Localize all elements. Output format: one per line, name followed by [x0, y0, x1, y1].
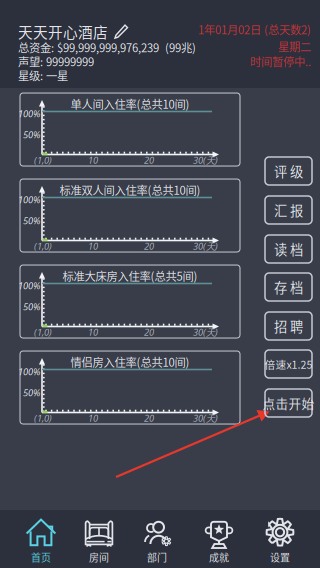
- staticText: 总资金: $99,999,999,976,239 (99兆): [18, 39, 196, 55]
- staticText: 天天开心酒店: [18, 21, 108, 42]
- staticText: 100%: [18, 193, 40, 206]
- staticText: 声望: 99999999: [18, 53, 94, 69]
- staticText: 首页: [31, 550, 51, 564]
- staticText: (1,0): [34, 154, 52, 166]
- staticText: 10: [88, 154, 98, 166]
- button[interactable]: 存 档: [265, 273, 312, 301]
- button[interactable]: 成就: [190, 510, 248, 568]
- staticText: 评 级: [274, 161, 303, 181]
- button[interactable]: 汇 报: [265, 196, 312, 224]
- staticText: 点击开始: [262, 394, 314, 412]
- staticText: 星级: 一星: [18, 67, 68, 83]
- button[interactable]: 房间: [70, 510, 128, 568]
- staticText: 成就: [209, 550, 229, 564]
- staticText: 星期二: [278, 38, 311, 54]
- staticText: 单人间入住率(总共10间): [70, 95, 189, 112]
- staticText: 汇 报: [274, 200, 303, 220]
- staticText: 10: [88, 326, 98, 338]
- staticText: 100%: [18, 279, 40, 292]
- staticText: (1,0): [34, 240, 52, 252]
- staticText: 10: [88, 240, 98, 252]
- staticText: 存 档: [274, 277, 303, 297]
- staticText: 1年01月02日 (总天数2): [198, 21, 311, 37]
- staticText: 30(天): [193, 412, 218, 424]
- button[interactable]: 首页: [12, 510, 70, 568]
- staticText: (1,0): [34, 412, 52, 424]
- button[interactable]: 设置: [251, 510, 309, 568]
- staticText: 20: [144, 154, 154, 166]
- staticText: 标准双人间入住率(总共10间): [59, 181, 200, 198]
- staticText: 20: [144, 412, 154, 424]
- staticText: 30(天): [193, 154, 218, 166]
- staticText: (1,0): [34, 326, 52, 338]
- button[interactable]: 部门: [128, 510, 186, 568]
- staticText: 20: [144, 326, 154, 338]
- staticText: 50%: [23, 300, 40, 313]
- staticText: 30(天): [193, 240, 218, 252]
- button[interactable]: 招 聘: [265, 312, 312, 340]
- staticText: 10: [88, 412, 98, 424]
- button[interactable]: Rename hotel: [114, 24, 129, 39]
- staticText: 情侣房入住率(总共10间): [70, 353, 189, 370]
- staticText: 倍速x1.25: [264, 356, 312, 372]
- staticText: 招 聘: [274, 316, 303, 336]
- button[interactable]: 点击开始: [265, 389, 312, 417]
- staticText: 时间暂停中..: [250, 53, 311, 69]
- staticText: 房间: [89, 550, 109, 564]
- button[interactable]: 读 档: [265, 235, 312, 263]
- button[interactable]: 倍速x1.25: [265, 350, 312, 378]
- staticText: 读 档: [274, 239, 303, 259]
- staticText: 50%: [23, 386, 40, 399]
- staticText: 50%: [23, 214, 40, 227]
- staticText: 100%: [18, 107, 40, 120]
- staticText: 部门: [147, 550, 167, 564]
- staticText: 20: [144, 240, 154, 252]
- staticText: 设置: [270, 550, 290, 564]
- staticText: 30(天): [193, 326, 218, 338]
- staticText: 标准大床房入住率(总共5间): [62, 267, 197, 284]
- staticText: 100%: [18, 365, 40, 378]
- staticText: 50%: [23, 128, 40, 141]
- button[interactable]: 评 级: [265, 157, 312, 185]
